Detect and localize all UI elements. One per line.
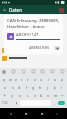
button[interactable]: Voice input bbox=[14, 100, 19, 106]
staticText: ABBRECHEN bbox=[29, 45, 49, 50]
button[interactable]: Sticker bbox=[31, 69, 36, 74]
staticText: g bbox=[32, 85, 35, 90]
button[interactable]: n bbox=[45, 92, 52, 98]
button[interactable]: Backspace bbox=[59, 91, 66, 99]
staticText: x bbox=[19, 93, 21, 98]
button[interactable]: g bbox=[30, 84, 37, 90]
button[interactable]: t bbox=[25, 76, 31, 82]
button[interactable]: Recents bbox=[36, 108, 47, 119]
staticText: ?123 bbox=[2, 101, 8, 105]
button[interactable] bbox=[0, 54, 67, 62]
staticText: m bbox=[54, 93, 58, 98]
button[interactable]: Shift bbox=[1, 91, 8, 99]
button[interactable]: q bbox=[1, 76, 7, 82]
button[interactable]: OK bbox=[54, 46, 60, 50]
button[interactable]: Gboard bbox=[2, 70, 6, 74]
button[interactable]: Clipboard bbox=[40, 69, 45, 74]
button[interactable]: h bbox=[37, 84, 44, 90]
button[interactable]: a bbox=[2, 84, 9, 90]
staticText: f bbox=[26, 85, 28, 90]
staticText: e bbox=[15, 77, 18, 82]
button[interactable]: Sync bbox=[57, 6, 65, 14]
staticText: k bbox=[54, 85, 56, 90]
staticText: y bbox=[11, 93, 13, 98]
button[interactable]: f bbox=[23, 84, 30, 90]
button[interactable]: e bbox=[13, 76, 19, 82]
staticText: j bbox=[47, 85, 48, 90]
staticText: v bbox=[34, 93, 36, 98]
button[interactable]: i bbox=[45, 76, 52, 82]
button[interactable]: Settings bbox=[60, 69, 65, 74]
button[interactable]: More bbox=[50, 69, 55, 74]
button[interactable]: Menu bbox=[51, 108, 62, 119]
button[interactable]: j bbox=[44, 84, 51, 90]
button[interactable]: Symbols bbox=[1, 100, 9, 106]
staticText: r bbox=[21, 77, 23, 82]
button[interactable]: x bbox=[16, 92, 24, 98]
staticText: c bbox=[27, 93, 29, 98]
button[interactable]: s bbox=[9, 84, 16, 90]
staticText: a bbox=[4, 85, 7, 90]
button[interactable]: z bbox=[31, 76, 38, 82]
button[interactable]: Back bbox=[0, 5, 9, 14]
staticText: s bbox=[12, 85, 14, 90]
staticText: l bbox=[61, 85, 62, 90]
staticText: n bbox=[47, 93, 50, 98]
button[interactable]: c bbox=[24, 92, 31, 98]
button[interactable]: v bbox=[31, 92, 38, 98]
button[interactable]: u bbox=[38, 76, 45, 82]
button[interactable]: b bbox=[38, 92, 45, 98]
staticText: d bbox=[18, 85, 21, 90]
staticText: u bbox=[40, 77, 43, 82]
button[interactable]: l bbox=[58, 84, 65, 90]
staticText: . bbox=[54, 101, 55, 105]
button[interactable]: GIF bbox=[21, 69, 26, 74]
staticText: b bbox=[40, 93, 43, 98]
button[interactable]: ABBRECHEN bbox=[27, 44, 51, 51]
button[interactable] bbox=[0, 46, 67, 54]
staticText: ABC891147 bbox=[16, 32, 39, 38]
staticText: q bbox=[3, 77, 6, 82]
button[interactable]: p bbox=[59, 76, 66, 82]
staticText: w bbox=[9, 77, 12, 82]
button[interactable]: Home bbox=[20, 108, 31, 119]
button[interactable]: Enter bbox=[58, 101, 65, 105]
staticText: o bbox=[54, 77, 57, 82]
staticText: t bbox=[27, 77, 29, 82]
button[interactable]: k bbox=[51, 84, 58, 90]
staticText: p bbox=[61, 77, 64, 82]
staticText: h bbox=[39, 85, 42, 90]
button[interactable]: r bbox=[19, 76, 25, 82]
button[interactable]: Artikelbild bbox=[7, 33, 14, 40]
button[interactable]: Search bbox=[11, 69, 16, 74]
button[interactable]: w bbox=[7, 76, 13, 82]
staticText: CAN Erfassung: 28880085, Haarfärber - br… bbox=[7, 18, 60, 29]
staticText: Daten bbox=[9, 7, 22, 13]
button[interactable]: o bbox=[52, 76, 59, 82]
staticText: z bbox=[34, 77, 36, 82]
button[interactable]: m bbox=[52, 92, 59, 98]
button[interactable]: y bbox=[8, 92, 16, 98]
button[interactable]: Back bbox=[5, 108, 16, 119]
button[interactable]: d bbox=[16, 84, 23, 90]
button[interactable]: . bbox=[52, 101, 57, 105]
staticText: i bbox=[48, 77, 49, 82]
